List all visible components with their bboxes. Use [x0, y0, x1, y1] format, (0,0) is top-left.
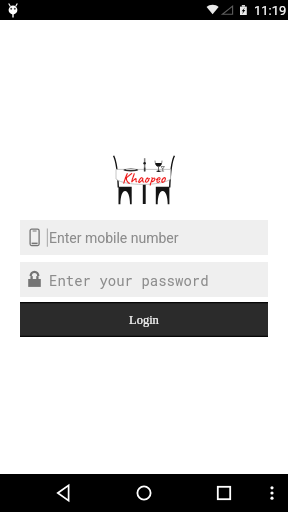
staticText: Khaopeo [122, 169, 166, 188]
button[interactable]: More options [260, 477, 284, 509]
button[interactable]: Back [48, 477, 80, 509]
button[interactable]: Login [20, 302, 268, 337]
button[interactable]: Home [128, 477, 160, 509]
button[interactable]: Enter mobile number [20, 220, 268, 255]
button[interactable]: Recent apps [208, 477, 240, 509]
button[interactable]: Enter your password [20, 262, 268, 297]
staticText: Login [129, 313, 159, 327]
staticText: Enter mobile number [49, 230, 179, 246]
staticText: 11:19 [254, 3, 287, 18]
staticText: Enter your password [49, 271, 209, 289]
